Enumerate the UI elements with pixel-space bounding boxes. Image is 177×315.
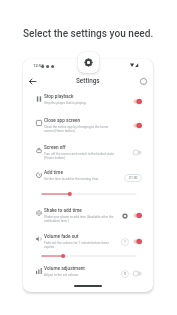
button[interactable]: Toggle: [133, 149, 142, 156]
staticText: Adjust to the set volume.: [44, 273, 80, 277]
button[interactable]: [41, 253, 137, 259]
button[interactable]: Volume adjustment: [23, 266, 153, 288]
button[interactable]: Shake to add time: [23, 208, 153, 230]
staticText: Stop the player that is playing.: [44, 101, 87, 105]
staticText: 0: [124, 272, 126, 276]
staticText: 12:53: [33, 63, 44, 68]
staticText: Volume fade out: [44, 234, 79, 240]
staticText: 01:00: [129, 176, 138, 180]
button[interactable]: Help: [137, 75, 150, 88]
staticText: Screen off: [44, 145, 66, 151]
button[interactable]: Volume fade out: [23, 234, 153, 256]
button[interactable]: Toggle: [133, 270, 142, 277]
button[interactable]: 01:00: [124, 174, 142, 182]
staticText: Close app screen: [44, 118, 81, 124]
button[interactable]: Toggle: [133, 98, 142, 105]
button[interactable]: 0: [121, 270, 129, 278]
staticText: Fade out the volume for 1 minute before …: [44, 241, 117, 249]
button[interactable]: Toggle: [133, 238, 142, 245]
staticText: Close the active app by changing to the …: [44, 125, 117, 133]
staticText: Turn off the screen and switch to the lo…: [44, 152, 117, 160]
button[interactable]: Screen off: [23, 145, 153, 167]
staticText: Shake your phone to add time (Available …: [44, 215, 117, 223]
button[interactable]: Close app screen: [23, 118, 153, 140]
staticText: Select the settings you need.: [23, 28, 154, 40]
button[interactable]: Configure: [120, 211, 129, 220]
button[interactable]: Back: [26, 75, 39, 88]
staticText: Settings: [76, 77, 100, 85]
staticText: Stop playback: [44, 94, 74, 100]
button[interactable]: Settings: [78, 52, 99, 73]
button[interactable]: Stop playback: [23, 94, 153, 116]
button[interactable]: Toggle: [133, 212, 142, 219]
button[interactable]: [41, 191, 137, 197]
button[interactable]: 1: [121, 238, 129, 246]
staticText: Volume adjustment: [44, 266, 85, 272]
staticText: Shake to add time: [44, 208, 82, 214]
staticText: Add time: [44, 170, 63, 176]
staticText: 1: [124, 240, 126, 244]
staticText: Set the time to add to the running time.: [44, 177, 100, 181]
button[interactable]: Add time: [23, 170, 153, 192]
button[interactable]: Toggle: [133, 122, 142, 129]
